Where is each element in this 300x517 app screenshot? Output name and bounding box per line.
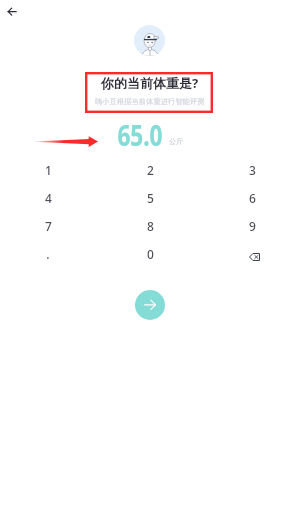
button[interactable]: 1 [0,156,99,184]
staticText: 65.0 [117,115,163,154]
staticText: 嗨小豆根据当前体重进行智能评测 [95,97,205,106]
button[interactable]: 7 [0,212,99,240]
button[interactable]: 2 [99,156,201,184]
button[interactable]: 8 [99,212,201,240]
button[interactable]: 4 [0,184,99,212]
staticText: 3 [249,162,256,178]
button[interactable]: Back [5,5,21,21]
button[interactable]: 3 [201,156,300,184]
button[interactable]: . [0,240,99,268]
other: Delete [249,253,260,261]
button[interactable]: Delete [201,240,300,268]
staticText: 公斤 [169,137,184,146]
staticText: 9 [249,218,256,234]
staticText: 2 [147,162,154,178]
button[interactable]: 5 [99,184,201,212]
button[interactable]: Next [135,290,165,320]
staticText: 5 [147,190,154,206]
staticText: 8 [147,218,154,234]
staticText: 0 [147,246,154,262]
staticText: . [46,246,50,262]
staticText: 1 [45,162,52,178]
staticText: 4 [45,190,52,206]
staticText: 6 [249,190,256,206]
staticText: 你的当前体重是? [101,74,199,92]
button[interactable]: 9 [201,212,300,240]
button[interactable]: 0 [99,240,201,268]
button[interactable]: 6 [201,184,300,212]
staticText: 7 [45,218,52,234]
